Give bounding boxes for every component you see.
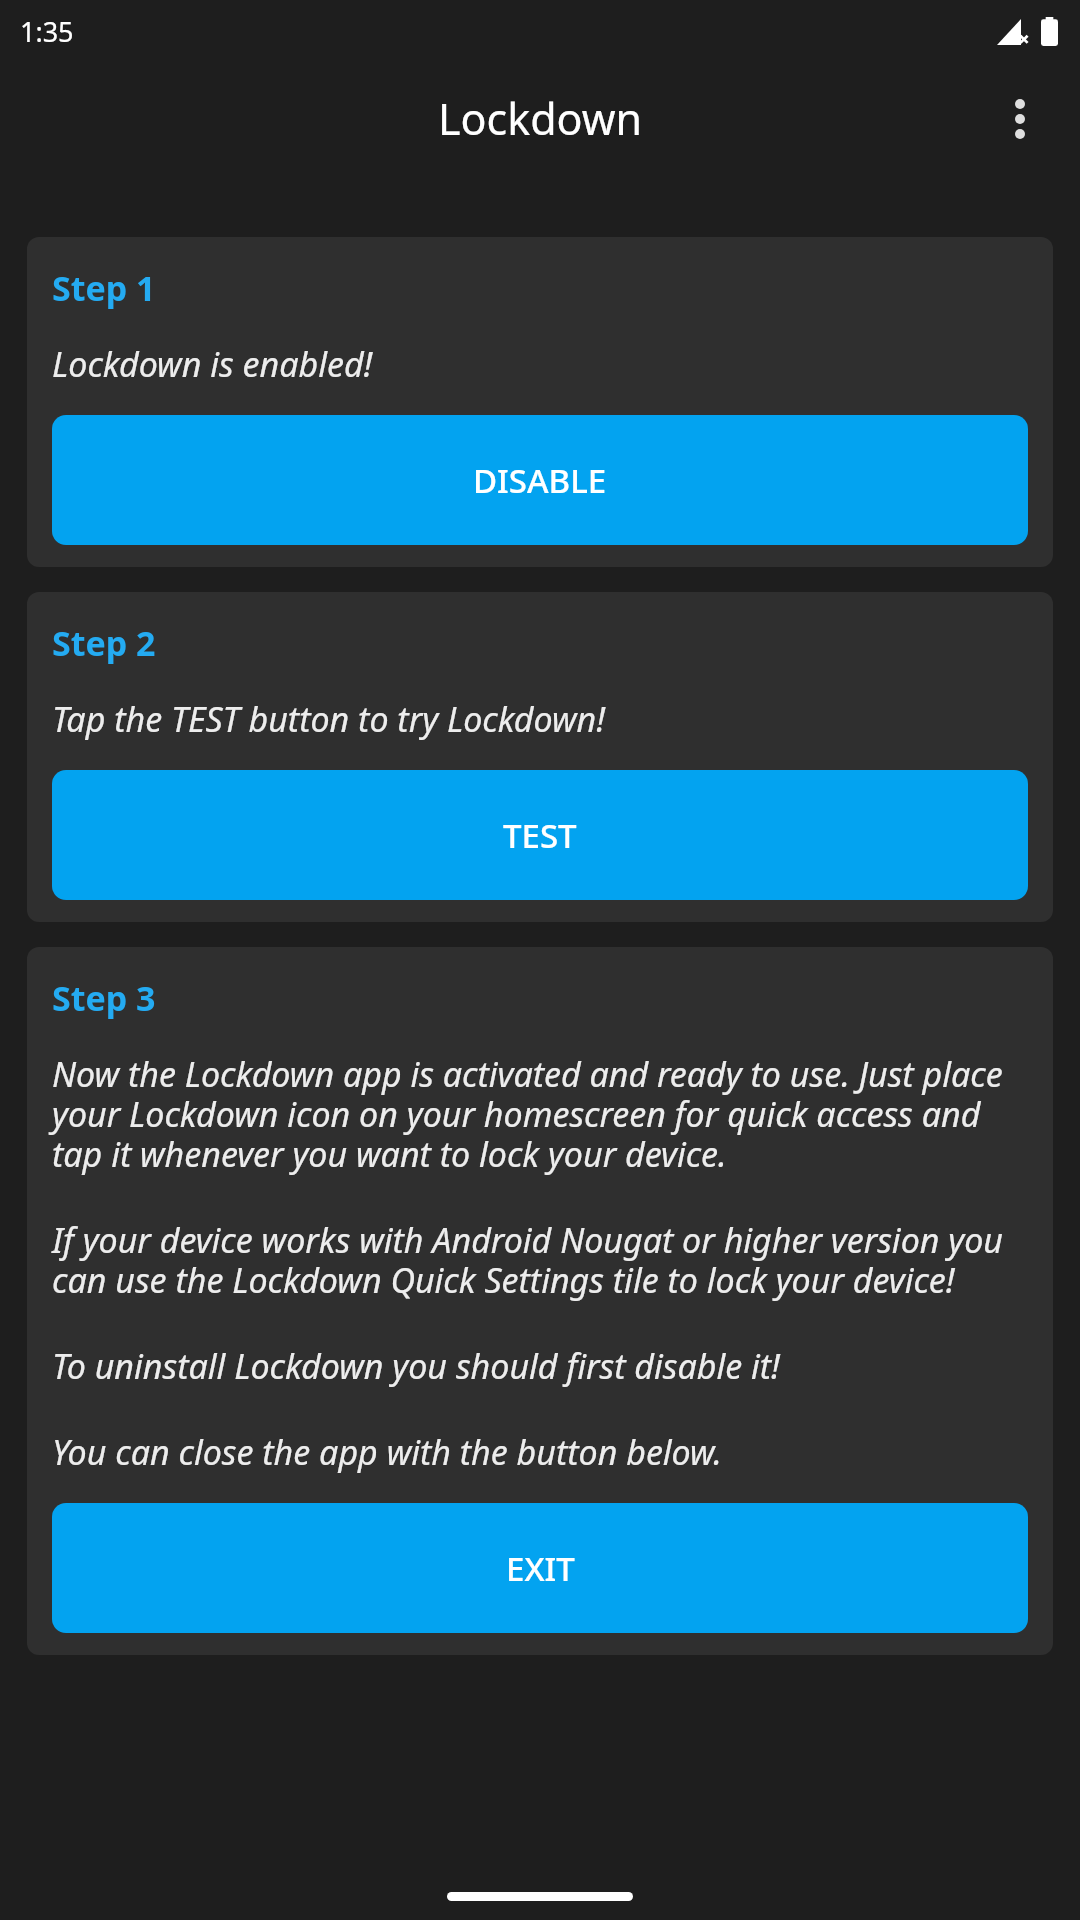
staticText: Now the Lockdown app is activated and re… — [52, 1051, 1028, 1177]
staticText: If your device works with Android Nougat… — [52, 1217, 1028, 1303]
staticText: You can close the app with the button be… — [52, 1429, 723, 1475]
staticText: Step 2 — [52, 620, 156, 666]
staticText: Tap the TEST button to try Lockdown! — [52, 696, 606, 742]
staticText: TEST — [503, 813, 577, 858]
staticText: Step 1 — [52, 265, 156, 311]
staticText: Lockdown is enabled! — [52, 341, 373, 387]
staticText: Lockdown — [438, 89, 643, 148]
staticText: Step 3 — [52, 975, 156, 1021]
button[interactable]: EXIT — [52, 1503, 1028, 1633]
staticText: To uninstall Lockdown you should first d… — [52, 1343, 780, 1389]
button[interactable]: More options — [982, 81, 1058, 157]
button[interactable]: DISABLE — [52, 415, 1028, 545]
staticText: EXIT — [506, 1546, 575, 1591]
staticText: 1:35 — [20, 13, 74, 50]
button[interactable]: TEST — [52, 770, 1028, 900]
staticText: DISABLE — [473, 458, 607, 503]
